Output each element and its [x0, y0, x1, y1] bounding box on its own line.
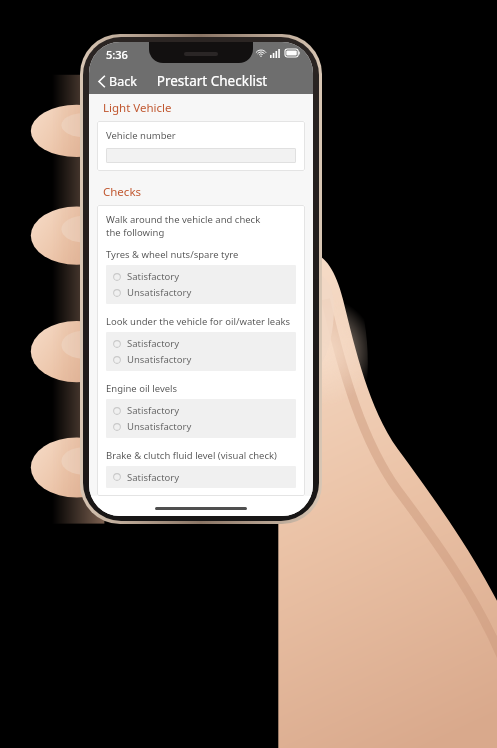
staticText: Unsatisfactory: [127, 286, 192, 299]
staticText: Engine oil levels: [106, 382, 178, 395]
staticText: Light Vehicle: [103, 100, 172, 116]
staticText: Brake & clutch fluid level (visual check…: [106, 449, 277, 462]
staticText: Checks: [103, 184, 142, 200]
staticText: Satisfactory: [127, 270, 180, 283]
button[interactable]: Unsatisfactory: [113, 353, 290, 366]
staticText: Look under the vehicle for oil/water lea…: [106, 315, 291, 328]
staticText: Prestart Checklist: [127, 72, 297, 90]
button[interactable]: [106, 148, 296, 163]
staticText: Unsatisfactory: [127, 420, 192, 433]
staticText: Unsatisfactory: [127, 353, 192, 366]
staticText: Satisfactory: [127, 471, 180, 483]
button[interactable]: Satisfactory: [113, 270, 290, 283]
button[interactable]: Unsatisfactory: [113, 286, 290, 299]
staticText: Tyres & wheel nuts/spare tyre: [106, 248, 239, 261]
button[interactable]: Unsatisfactory: [113, 420, 290, 433]
button[interactable]: Satisfactory: [113, 404, 290, 417]
staticText: Satisfactory: [127, 337, 180, 350]
staticText: Walk around the vehicle and check the fo…: [106, 213, 261, 239]
staticText: Back: [109, 73, 137, 90]
staticText: 5:36: [106, 47, 128, 62]
button[interactable]: Back: [89, 70, 143, 93]
staticText: Vehicle number: [106, 129, 176, 142]
staticText: Satisfactory: [127, 404, 180, 417]
button[interactable]: Satisfactory: [113, 471, 290, 483]
button[interactable]: Satisfactory: [113, 337, 290, 350]
